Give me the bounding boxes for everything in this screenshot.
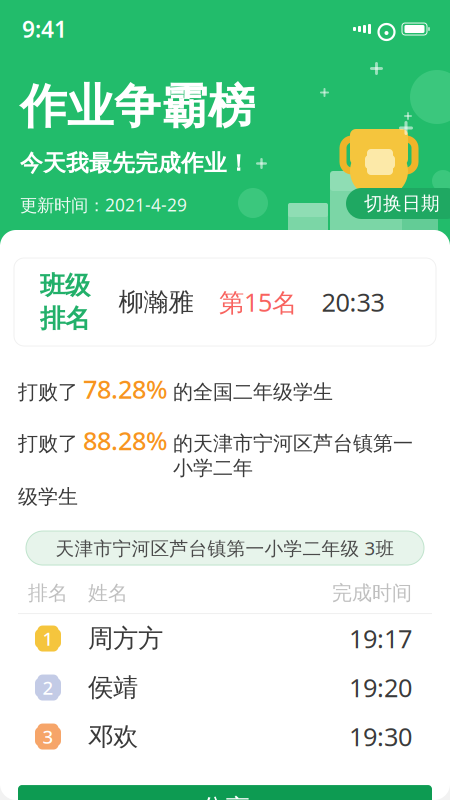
staticText: 打败了 xyxy=(18,380,78,404)
staticText: 2 xyxy=(42,675,53,700)
staticText: 切换日期 xyxy=(364,192,440,215)
staticText: 3 xyxy=(42,724,53,749)
staticText: 的天津市宁河区芦台镇第一小学二年 xyxy=(173,431,413,480)
button[interactable]: 分享 xyxy=(18,785,432,800)
staticText: 第15名 xyxy=(219,285,297,319)
staticText: 9:41 xyxy=(22,14,67,44)
staticText: 天津市宁河区芦台镇第一小学二年级 3班 xyxy=(55,536,394,560)
staticText: 打败了 xyxy=(18,431,78,456)
staticText: 分享 xyxy=(200,793,250,800)
staticText: 周方方 xyxy=(88,623,163,654)
staticText: 20:33 xyxy=(321,285,384,319)
staticText: 完成时间 xyxy=(332,581,412,605)
staticText: 78.28% xyxy=(83,372,168,406)
staticText: 侯靖 xyxy=(88,672,138,703)
staticText: 19:20 xyxy=(349,671,412,704)
staticText: 排名 xyxy=(40,303,90,334)
staticText: 88.28% xyxy=(83,424,168,457)
staticText: 19:30 xyxy=(349,720,412,753)
staticText: 级学生 xyxy=(18,484,78,509)
staticText: 1 xyxy=(42,626,53,651)
staticText: 更新时间：2021-4-29 xyxy=(20,193,187,216)
staticText: 班级 xyxy=(40,270,90,301)
staticText: 作业争霸榜 xyxy=(20,78,255,135)
staticText: 柳瀚雅 xyxy=(118,286,193,317)
staticText: 的全国二年级学生 xyxy=(173,380,333,404)
staticText: 邓欢 xyxy=(88,721,138,752)
staticText: 排名 xyxy=(28,581,68,605)
staticText: 19:17 xyxy=(349,622,412,655)
staticText: 姓名 xyxy=(88,581,128,605)
button[interactable]: 切换日期 xyxy=(346,188,450,219)
staticText: 今天我最先完成作业！ xyxy=(20,149,250,177)
